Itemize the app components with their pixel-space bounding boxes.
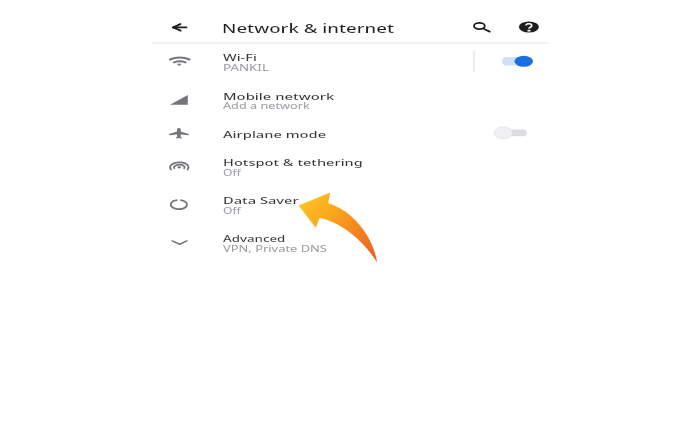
- button[interactable]: Help: [517, 17, 541, 37]
- staticText: Add a network: [223, 100, 310, 111]
- staticText: VPN, Private DNS: [223, 243, 327, 254]
- button[interactable]: Hotspot & tethering: [150, 149, 547, 187]
- staticText: Off: [223, 205, 242, 216]
- staticText: Off: [223, 167, 242, 178]
- staticText: Airplane mode: [223, 128, 326, 141]
- button[interactable]: Data Saver: [150, 187, 547, 225]
- button[interactable]: Wi-Fi on: [496, 52, 538, 70]
- staticText: Wi-Fi: [223, 51, 258, 64]
- staticText: Hotspot & tethering: [223, 156, 364, 169]
- button[interactable]: Airplane mode: [150, 120, 547, 158]
- button[interactable]: Back: [168, 18, 190, 34]
- button[interactable]: Advanced: [150, 225, 547, 263]
- button[interactable]: Airplane mode off: [492, 124, 534, 142]
- button[interactable]: Search: [470, 17, 494, 37]
- staticText: Data Saver: [223, 194, 300, 207]
- staticText: Network & internet: [222, 20, 396, 36]
- button[interactable]: Mobile network: [150, 82, 547, 120]
- staticText: PANKIL: [223, 62, 270, 73]
- staticText: Advanced: [223, 232, 286, 245]
- button[interactable]: Wi-Fi: [150, 44, 547, 82]
- staticText: Mobile network: [223, 90, 335, 103]
